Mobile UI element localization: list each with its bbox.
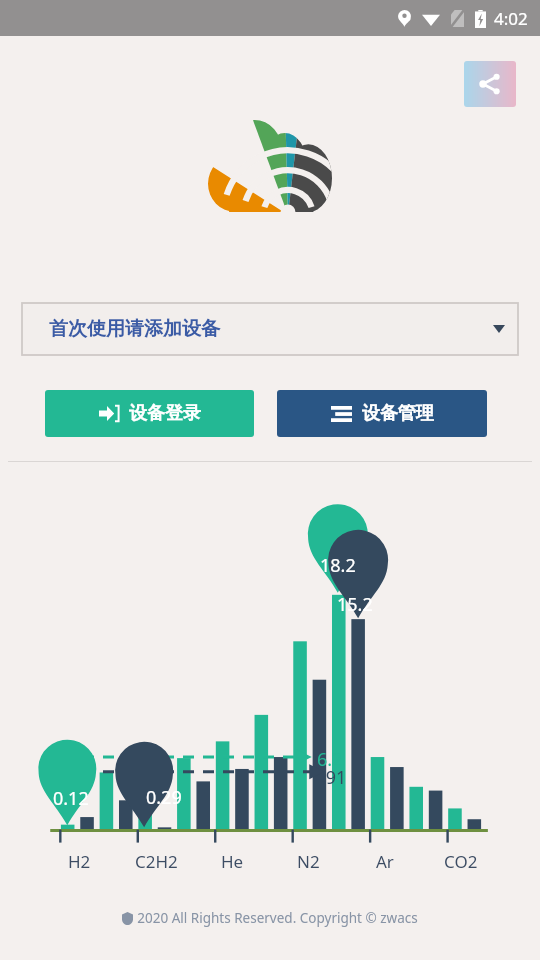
staticText: 0.12	[53, 786, 89, 811]
staticText: 0.29	[146, 785, 182, 810]
staticText: Ar	[376, 850, 394, 873]
staticText: 首次使用请添加设备	[49, 317, 220, 341]
staticText: 设备登录	[129, 402, 201, 425]
staticText: 设备管理	[362, 402, 434, 425]
staticText: 4:02	[494, 7, 528, 30]
staticText: 15.2	[337, 592, 373, 617]
button[interactable]: 首次使用请添加设备	[22, 303, 518, 355]
staticText: 6.2	[317, 747, 343, 772]
staticText: He	[221, 850, 244, 873]
staticText: H2	[68, 850, 91, 873]
button[interactable]: 设备管理	[277, 390, 487, 437]
button[interactable]: 设备登录	[45, 390, 254, 437]
staticText: CO2	[444, 850, 478, 873]
staticText: C2H2	[135, 850, 178, 873]
staticText: .91	[321, 765, 347, 790]
button[interactable]: Share	[464, 61, 516, 107]
staticText: 2020 All Rights Reserved. Copyright © zw…	[137, 909, 418, 927]
staticText: N2	[297, 850, 320, 873]
staticText: 18.2	[320, 553, 356, 578]
